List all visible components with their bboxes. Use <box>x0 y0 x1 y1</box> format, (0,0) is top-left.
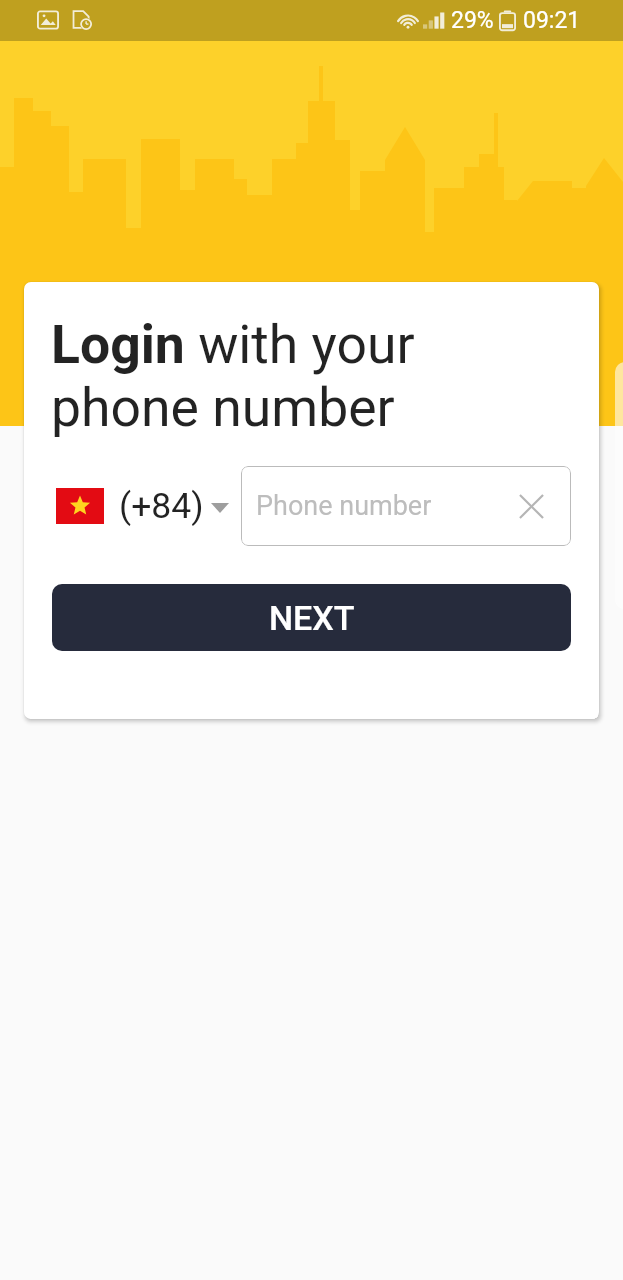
staticText: Login with your phone number <box>51 313 461 439</box>
staticText: (+84) <box>119 485 204 527</box>
button[interactable]: Clear <box>514 489 549 524</box>
button[interactable]: Select country code <box>56 466 229 546</box>
staticText: Phone number <box>256 490 432 522</box>
staticText: NEXT <box>269 598 355 638</box>
button[interactable]: NEXT <box>52 584 571 651</box>
button[interactable]: Phone number field <box>241 466 571 546</box>
staticText: 29% <box>451 7 494 34</box>
staticText: 09:21 <box>523 7 581 34</box>
